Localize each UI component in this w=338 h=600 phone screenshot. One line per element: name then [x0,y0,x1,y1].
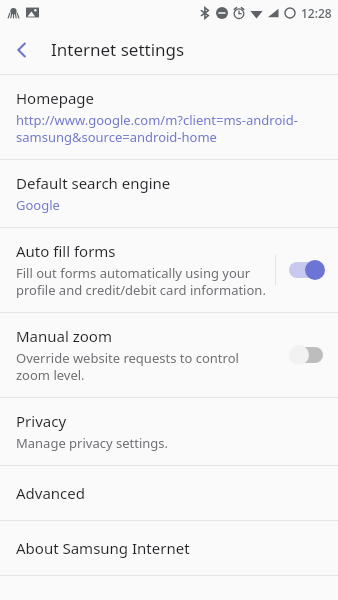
staticText: About Samsung Internet [16,538,190,558]
button[interactable]: Privacy [0,398,338,465]
button[interactable]: Auto fill forms [0,228,338,312]
button[interactable]: About Samsung Internet [0,521,338,575]
staticText: Default search engine [16,173,171,193]
button[interactable]: Auto fill forms [276,246,338,294]
staticText: Fill out forms automatically using your … [16,264,267,299]
staticText: Internet settings [51,38,185,61]
button[interactable]: Default search engine [0,160,338,227]
staticText: Privacy [16,411,67,431]
button[interactable]: Manual zoom [276,331,338,379]
staticText: Homepage [16,88,95,108]
staticText: 12:28 [301,5,332,21]
staticText: Auto fill forms [16,241,116,261]
staticText: Google [16,196,60,214]
staticText: http://www.google.com/m?client=ms-androi… [16,111,322,146]
button[interactable]: Homepage [0,75,338,159]
button[interactable]: Advanced [0,466,338,520]
button[interactable]: Manual zoom [0,313,338,397]
staticText: Override website requests to control zoo… [16,349,267,384]
staticText: Manual zoom [16,326,112,346]
button[interactable]: Back [0,28,44,72]
staticText: Advanced [16,483,86,503]
staticText: Manage privacy settings. [16,434,169,452]
